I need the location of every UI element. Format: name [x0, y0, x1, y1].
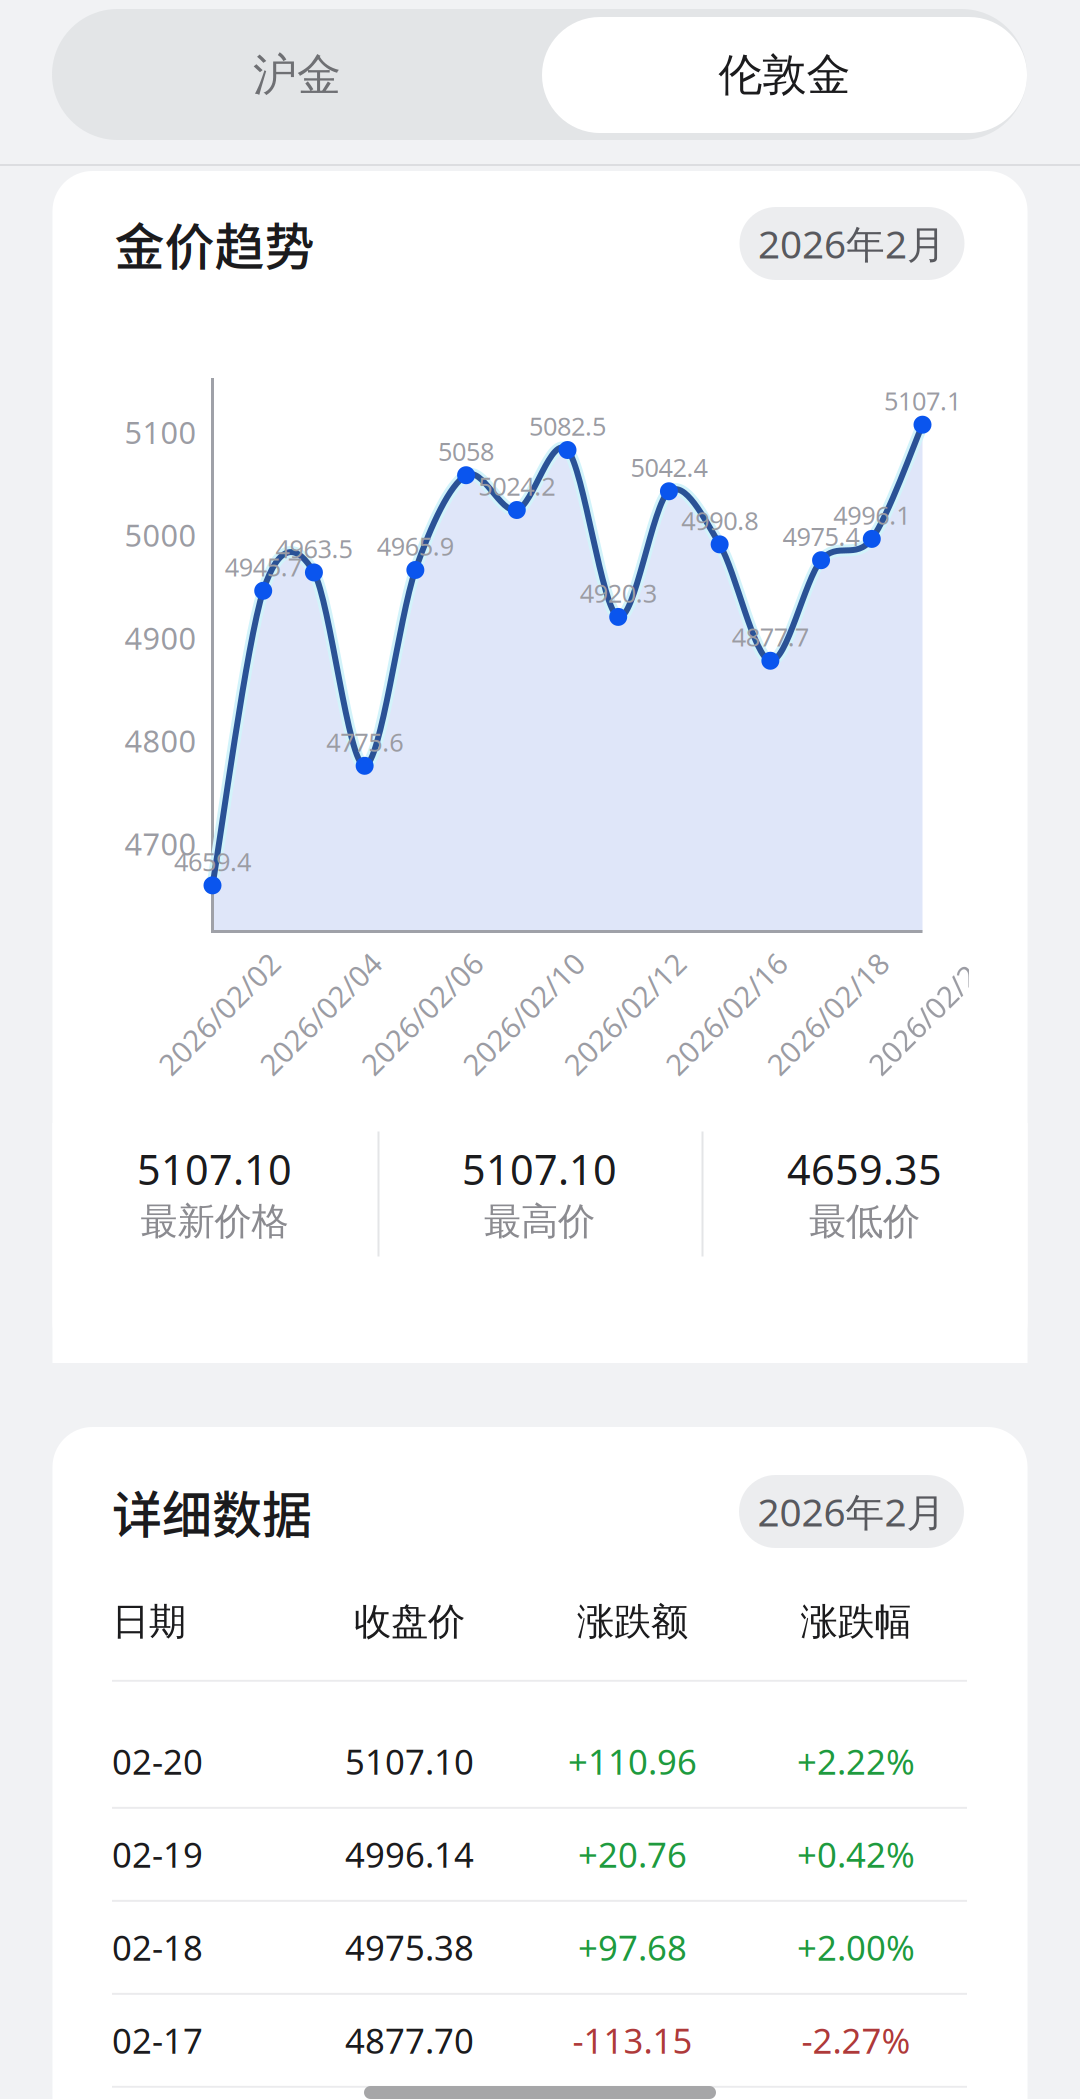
staticText: 5024.2 — [478, 469, 555, 503]
staticText: 日期 — [112, 1599, 186, 1645]
staticText: +97.68 — [578, 1924, 687, 1970]
staticText: 最高价 — [484, 1198, 595, 1244]
staticText: 详细数据 — [112, 1475, 312, 1548]
button[interactable]: 02-18 — [112, 1902, 968, 1993]
button[interactable]: 02-19 — [112, 1809, 968, 1900]
staticText: 5082.5 — [529, 409, 606, 443]
staticText: 2026/02/06 — [343, 994, 501, 1033]
staticText: -2.27% — [801, 2017, 910, 2063]
staticText: 2026/02/10 — [444, 994, 602, 1033]
staticText: 02-17 — [112, 2017, 203, 2063]
button[interactable]: 2026年2月 — [739, 1475, 964, 1548]
staticText: 最低价 — [809, 1198, 920, 1244]
staticText: 5107.1 — [884, 384, 961, 417]
staticText: 4877.70 — [345, 2017, 474, 2063]
staticText: 4900 — [124, 617, 196, 658]
button[interactable]: 02-20 — [112, 1716, 968, 1807]
staticText: 5058 — [438, 434, 494, 468]
staticText: +2.00% — [797, 1924, 915, 1970]
staticText: 2026/02/16 — [647, 994, 805, 1033]
staticText: 02-19 — [112, 1831, 203, 1877]
staticText: 涨跌幅 — [800, 1599, 911, 1645]
staticText: 02-18 — [112, 1924, 203, 1970]
staticText: +110.96 — [568, 1738, 697, 1784]
staticText: 4775.6 — [326, 725, 403, 759]
staticText: 收盘价 — [354, 1599, 465, 1645]
staticText: 4975.4 — [783, 519, 860, 553]
staticText: 5100 — [124, 412, 196, 452]
staticText: 4963.5 — [275, 532, 352, 565]
staticText: 2026/02/20 — [850, 994, 1008, 1033]
staticText: 4990.8 — [681, 503, 758, 537]
staticText: 伦敦金 — [718, 48, 850, 102]
staticText: +20.76 — [578, 1831, 687, 1877]
staticText: 4800 — [124, 720, 196, 761]
staticText: 5107.10 — [462, 1142, 617, 1196]
staticText: 4659.35 — [787, 1142, 942, 1196]
staticText: 2026/02/18 — [749, 994, 907, 1033]
staticText: 4945.7 — [225, 550, 302, 584]
staticText: 沪金 — [253, 48, 341, 102]
staticText: -113.15 — [572, 2017, 692, 2063]
staticText: 5107.10 — [137, 1142, 292, 1196]
button[interactable]: 沪金 — [52, 17, 542, 133]
button[interactable]: 2026年2月 — [739, 207, 964, 280]
staticText: 金价趋势 — [114, 207, 314, 280]
staticText: 5042.4 — [630, 450, 707, 484]
staticText: 4975.38 — [345, 1924, 474, 1970]
staticText: 4700 — [124, 823, 196, 864]
staticText: 4965.9 — [377, 529, 454, 563]
staticText: 4996.14 — [345, 1831, 474, 1877]
staticText: 2026年2月 — [757, 1486, 945, 1537]
staticText: 4659.4 — [174, 845, 251, 878]
staticText: 2026年2月 — [758, 218, 946, 269]
staticText: 涨跌额 — [577, 1599, 688, 1645]
staticText: 5107.10 — [345, 1738, 474, 1784]
staticText: +2.22% — [797, 1738, 915, 1784]
staticText: 02-20 — [112, 1738, 203, 1784]
staticText: 5000 — [124, 514, 196, 555]
staticText: 4996.1 — [833, 498, 910, 532]
staticText: 2026/02/04 — [242, 994, 400, 1033]
staticText: 4920.3 — [580, 576, 657, 610]
staticText: 2026/02/12 — [546, 994, 704, 1033]
staticText: +0.42% — [797, 1831, 915, 1877]
button[interactable]: 02-17 — [112, 1995, 968, 2086]
staticText: 2026/02/02 — [140, 994, 298, 1033]
staticText: 最新价格 — [140, 1198, 288, 1244]
staticText: 4877.7 — [732, 620, 809, 653]
button[interactable]: 伦敦金 — [542, 17, 1027, 133]
